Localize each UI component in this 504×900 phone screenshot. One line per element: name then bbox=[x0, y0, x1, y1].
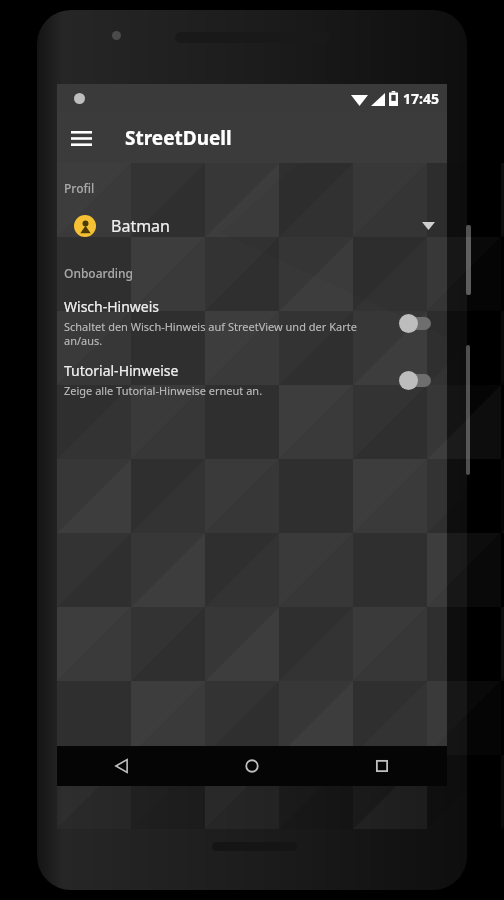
staticText: Tutorial-Hinweise bbox=[64, 361, 179, 380]
button[interactable]: Recent apps bbox=[317, 746, 447, 786]
button[interactable]: Batman bbox=[57, 205, 447, 247]
button[interactable]: Wisch-Hinweis bbox=[397, 308, 437, 338]
staticText: 17:45 bbox=[403, 89, 439, 108]
staticText: Zeige alle Tutorial-Hinweise erneut an. bbox=[64, 383, 364, 398]
button[interactable]: Open navigation menu bbox=[57, 114, 105, 162]
staticText: Profil bbox=[64, 180, 95, 196]
staticText: Schaltet den Wisch-Hinweis auf StreetVie… bbox=[64, 319, 364, 348]
button[interactable]: Home bbox=[187, 746, 317, 786]
staticText: Batman bbox=[111, 215, 170, 237]
button[interactable]: Tutorial-Hinweise bbox=[57, 359, 447, 400]
staticText: StreetDuell bbox=[125, 125, 232, 151]
staticText: Wisch-Hinweis bbox=[64, 297, 160, 316]
staticText: Onboarding bbox=[64, 265, 134, 281]
button[interactable]: Wisch-Hinweis bbox=[57, 295, 447, 350]
button[interactable]: Tutorial-Hinweise bbox=[397, 365, 437, 395]
button[interactable]: Back bbox=[57, 746, 187, 786]
